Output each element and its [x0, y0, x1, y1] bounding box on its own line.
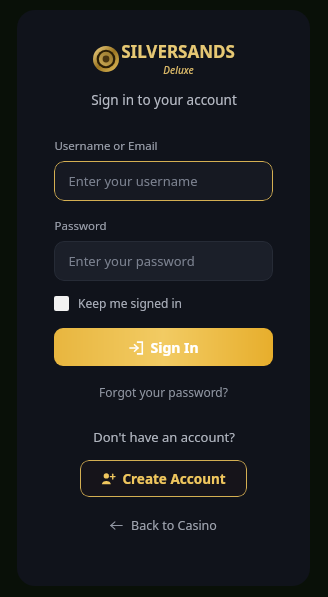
staticText: Username or Email	[54, 138, 158, 154]
button[interactable]: Enter your password	[54, 241, 273, 281]
staticText: Keep me signed in	[78, 295, 182, 311]
staticText: Sign In	[150, 338, 199, 357]
button[interactable]: Back to Casino	[104, 514, 223, 537]
staticText: Sign in to your account	[91, 91, 237, 109]
staticText: Enter your username	[68, 172, 198, 190]
staticText: Password	[54, 218, 107, 234]
staticText: Don't have an account?	[93, 428, 235, 446]
staticText: Deluxe	[163, 63, 194, 77]
staticText: Forgot your password?	[99, 384, 228, 400]
button[interactable]: Enter your username	[54, 161, 273, 201]
button[interactable]: Sign In	[54, 328, 273, 366]
staticText: SILVERSANDS	[121, 40, 235, 63]
button[interactable]: Forgot your password?	[93, 382, 234, 402]
button[interactable]: Keep me signed in	[54, 295, 182, 311]
staticText: Create Account	[122, 470, 226, 488]
staticText: Back to Casino	[131, 517, 217, 534]
button[interactable]: Create Account	[80, 460, 247, 497]
staticText: Enter your password	[68, 252, 195, 270]
